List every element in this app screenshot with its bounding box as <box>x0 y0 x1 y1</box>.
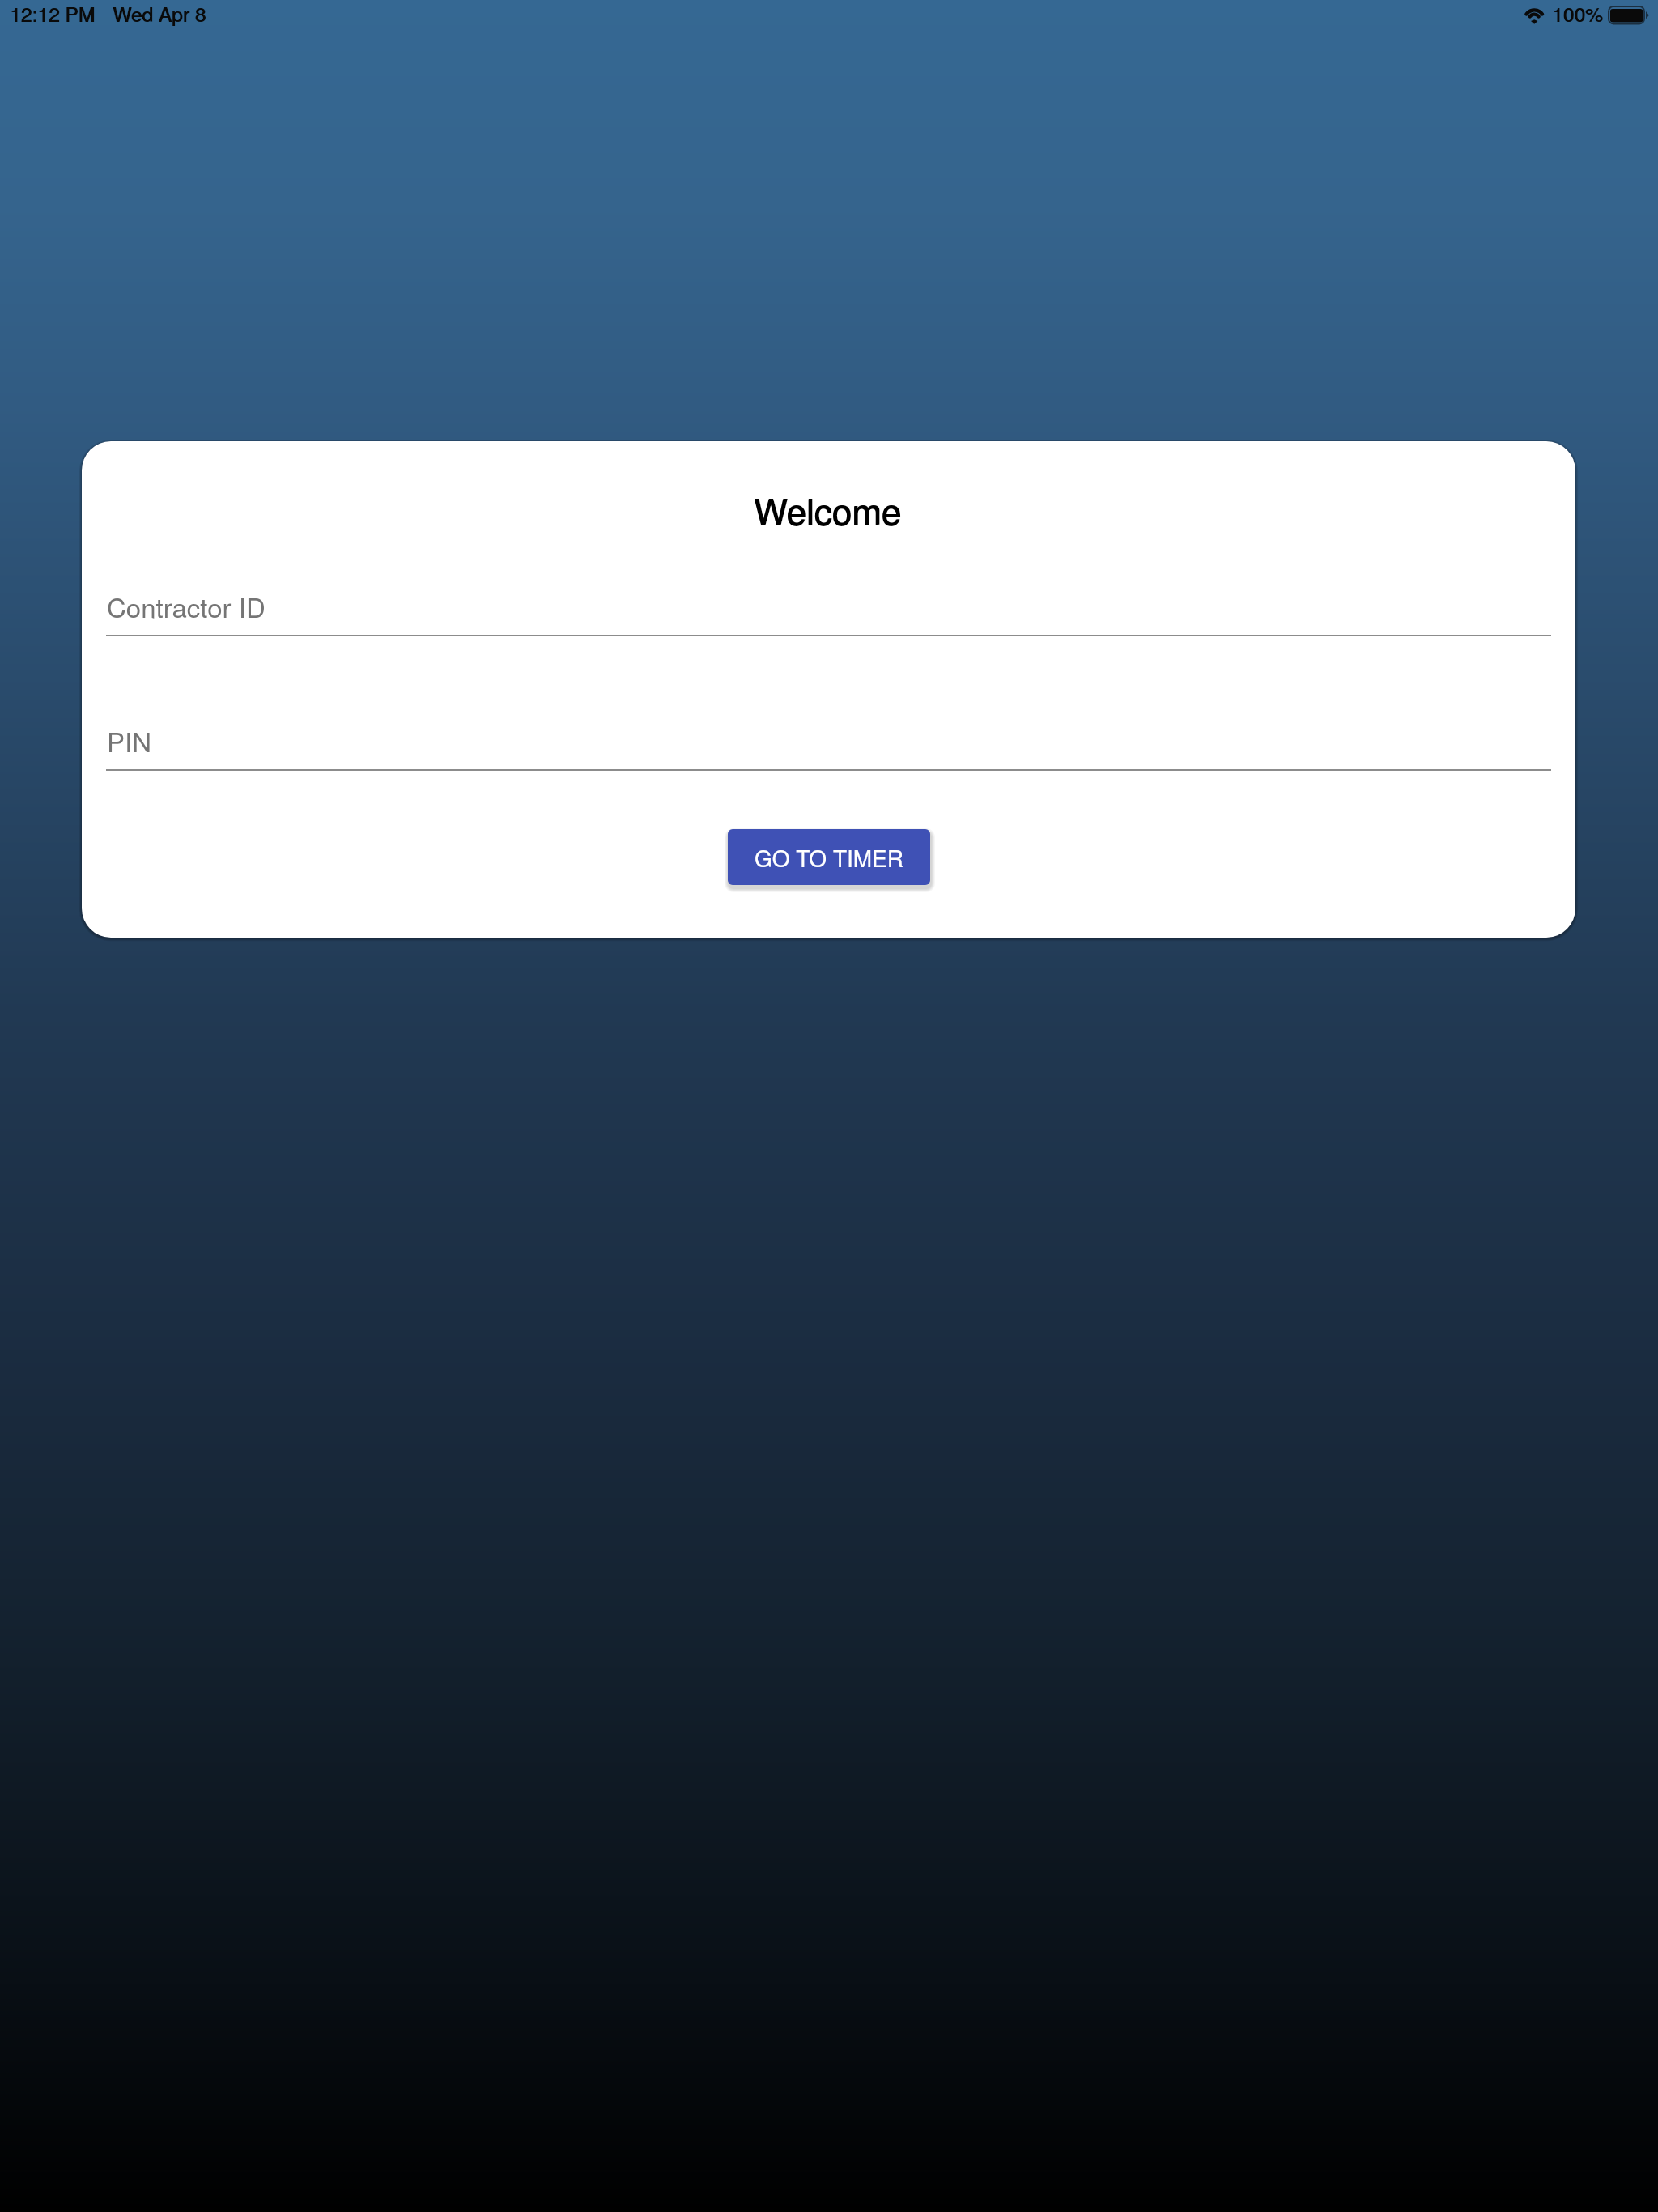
staticText: Welcome <box>754 483 902 534</box>
staticText: Welcome <box>755 483 903 534</box>
other: Wi-Fi <box>1523 7 1546 24</box>
other: Battery full <box>1608 6 1649 25</box>
button[interactable]: Contractor ID <box>106 589 1551 636</box>
staticText: GO TO TIMER <box>755 841 904 874</box>
staticText: Welcome <box>754 484 902 535</box>
staticText: 12:12 PM <box>10 0 95 28</box>
staticText: Wed Apr 8 <box>113 0 207 28</box>
staticText: PIN <box>107 721 152 759</box>
button[interactable]: GO TO TIMER <box>728 829 930 885</box>
staticText: 100% <box>1552 0 1603 28</box>
staticText: 100% <box>1553 0 1604 28</box>
staticText: Contractor ID <box>107 587 266 625</box>
button[interactable]: PIN <box>106 724 1551 771</box>
staticText: Wed Apr 8 <box>113 0 206 28</box>
staticText: 12:12 PM <box>11 0 96 28</box>
